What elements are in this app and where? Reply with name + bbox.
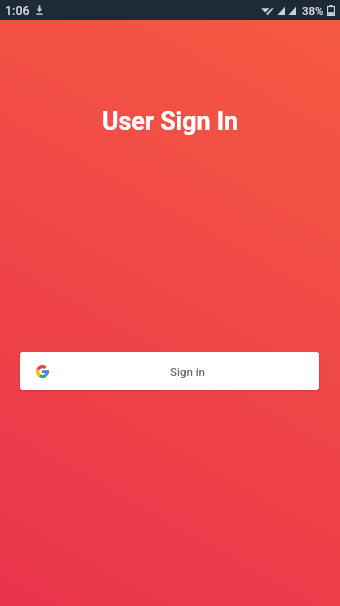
staticText: User Sign In	[0, 107, 340, 136]
staticText: 38%	[302, 4, 324, 17]
other: Wi-Fi disconnected	[261, 6, 274, 16]
other: Mobile signal SIM 1	[277, 6, 285, 15]
other: Mobile signal SIM 2	[288, 6, 296, 15]
button[interactable]: Sign in	[20, 352, 319, 390]
other: Download complete	[35, 5, 44, 15]
other: Battery 38 percent	[327, 5, 335, 16]
staticText: 1:06	[5, 3, 30, 18]
staticText: Sign in	[170, 365, 206, 378]
